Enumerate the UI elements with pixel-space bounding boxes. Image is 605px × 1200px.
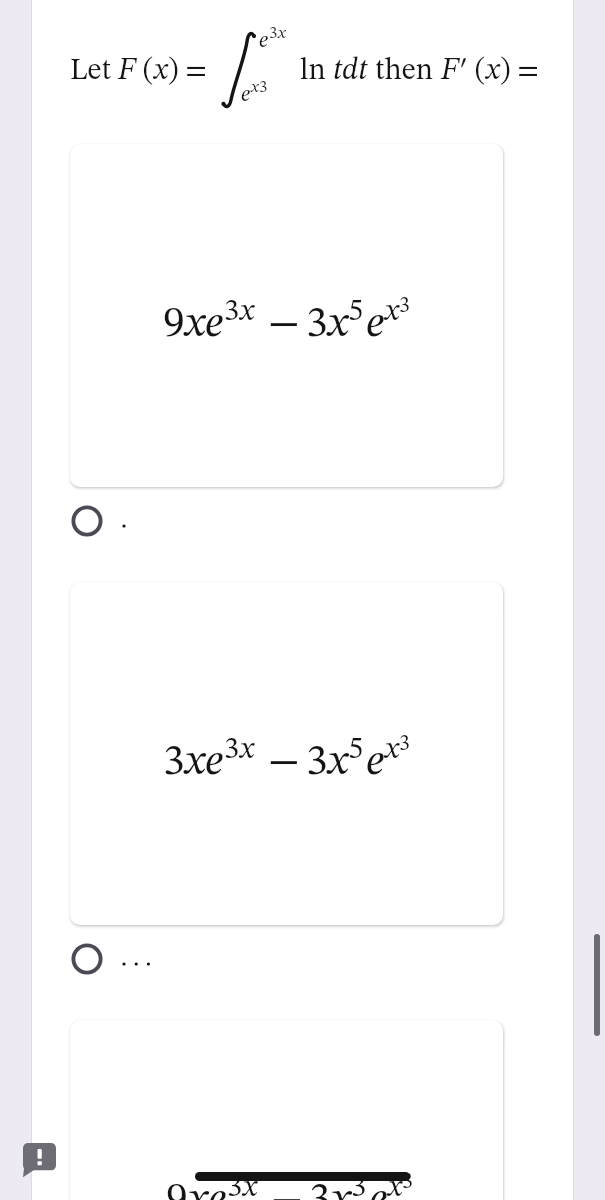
staticText: e — [366, 740, 385, 784]
staticText: 3 — [399, 733, 410, 755]
staticText: ) = — [500, 56, 539, 86]
staticText: e — [208, 1178, 227, 1200]
staticText: x — [185, 302, 205, 346]
staticText: 5 — [348, 735, 364, 766]
staticText: x — [328, 302, 348, 346]
staticText: x — [328, 740, 348, 784]
staticText: x — [385, 735, 399, 766]
staticText: ′ — [459, 56, 468, 86]
staticText: 3 — [306, 302, 328, 346]
button[interactable]: 9 — [70, 144, 503, 487]
button[interactable] — [62, 933, 232, 985]
staticText: then — [368, 56, 441, 86]
staticText: x — [331, 1178, 351, 1200]
staticText: e — [205, 740, 224, 784]
staticText: 3 — [269, 25, 278, 42]
staticText: tdt — [333, 56, 368, 86]
staticText: x — [154, 56, 168, 86]
button[interactable]: Report a problem — [23, 1143, 56, 1179]
staticText: x — [240, 735, 254, 766]
staticText: 3 — [259, 79, 268, 96]
staticText: 3 — [309, 1178, 331, 1200]
staticText: − — [268, 740, 300, 784]
staticText: e — [259, 30, 269, 52]
staticText: x — [388, 1173, 402, 1200]
staticText: ( — [136, 56, 154, 86]
staticText: 3 — [402, 1171, 413, 1193]
staticText: ln — [300, 56, 333, 86]
staticText: e — [205, 302, 224, 346]
staticText: 3 — [227, 1173, 243, 1200]
staticText: ( — [468, 56, 486, 86]
button[interactable] — [62, 495, 232, 547]
staticText: x — [385, 297, 399, 328]
staticText: x — [243, 1173, 257, 1200]
button[interactable]: 3 — [70, 582, 503, 925]
staticText: − — [268, 302, 300, 346]
staticText: 3 — [351, 1173, 367, 1200]
staticText: e — [241, 84, 251, 106]
staticText: 3 — [399, 295, 410, 317]
staticText: 3 — [163, 740, 185, 784]
staticText: 3 — [306, 740, 328, 784]
staticText: x — [278, 25, 286, 42]
staticText: 9 — [163, 302, 185, 346]
staticText: − — [271, 1178, 303, 1200]
staticText: F — [441, 56, 459, 86]
button[interactable]: 9 — [70, 1020, 503, 1200]
staticText: Let — [70, 56, 118, 86]
staticText: e — [369, 1178, 388, 1200]
staticText: x — [240, 297, 254, 328]
staticText: 3 — [224, 297, 240, 328]
staticText: F — [118, 56, 136, 86]
staticText: x — [188, 1178, 208, 1200]
staticText: ) = — [168, 56, 214, 86]
staticText: e — [366, 302, 385, 346]
staticText: x — [185, 740, 205, 784]
staticText: x — [486, 56, 500, 86]
staticText: 3 — [224, 735, 240, 766]
staticText: 9 — [166, 1178, 188, 1200]
staticText: 5 — [348, 297, 364, 328]
staticText: x — [251, 79, 259, 96]
